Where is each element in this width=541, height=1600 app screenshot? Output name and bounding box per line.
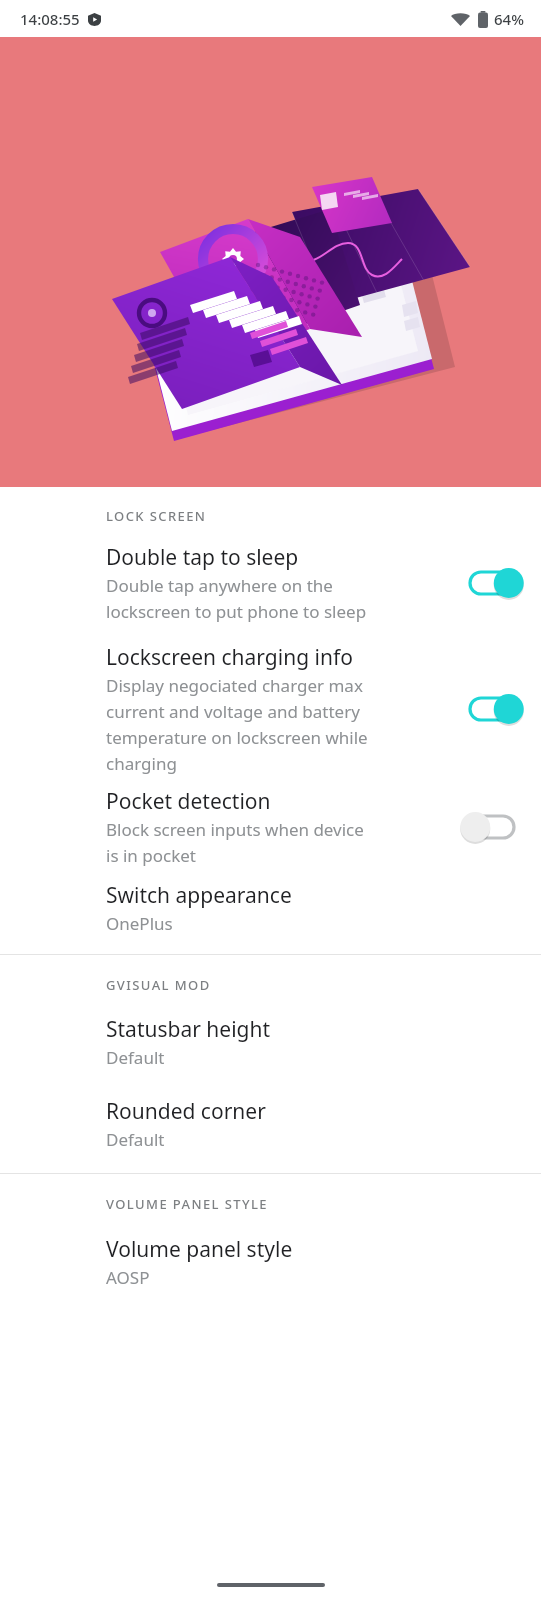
- staticText: VOLUME PANEL STYLE: [106, 1195, 268, 1213]
- staticText: 14:08:55: [20, 9, 80, 29]
- button[interactable]: Statusbar height: [0, 1015, 541, 1069]
- staticText: Double tap to sleep: [106, 543, 299, 572]
- staticText: Statusbar height: [106, 1015, 271, 1044]
- staticText: Double tap anywhere on the lockscreen to…: [106, 574, 367, 623]
- button[interactable]: Toggle on: [463, 692, 521, 726]
- staticText: Switch appearance: [106, 881, 292, 910]
- staticText: Display negociated charger max current a…: [106, 674, 368, 775]
- button[interactable]: Toggle on: [463, 566, 521, 600]
- staticText: Rounded corner: [106, 1097, 266, 1126]
- staticText: Default: [106, 1128, 165, 1151]
- button[interactable]: Volume panel style: [0, 1235, 541, 1289]
- staticText: LOCK SCREEN: [106, 507, 207, 525]
- staticText: Volume panel style: [106, 1235, 293, 1264]
- button[interactable]: Toggle off: [463, 810, 521, 844]
- button[interactable]: Double tap to sleep: [0, 543, 541, 623]
- staticText: 64%: [494, 9, 524, 29]
- button[interactable]: Lockscreen charging info: [0, 643, 541, 775]
- staticText: AOSP: [106, 1266, 150, 1289]
- button[interactable]: Rounded corner: [0, 1097, 541, 1151]
- button[interactable]: Switch appearance: [0, 881, 541, 935]
- staticText: OnePlus: [106, 912, 173, 935]
- staticText: Block screen inputs when device is in po…: [106, 818, 364, 867]
- staticText: Pocket detection: [106, 787, 271, 816]
- staticText: GVISUAL MOD: [106, 976, 211, 994]
- staticText: Lockscreen charging info: [106, 643, 353, 672]
- button[interactable]: Pocket detection: [0, 787, 541, 867]
- staticText: Default: [106, 1046, 165, 1069]
